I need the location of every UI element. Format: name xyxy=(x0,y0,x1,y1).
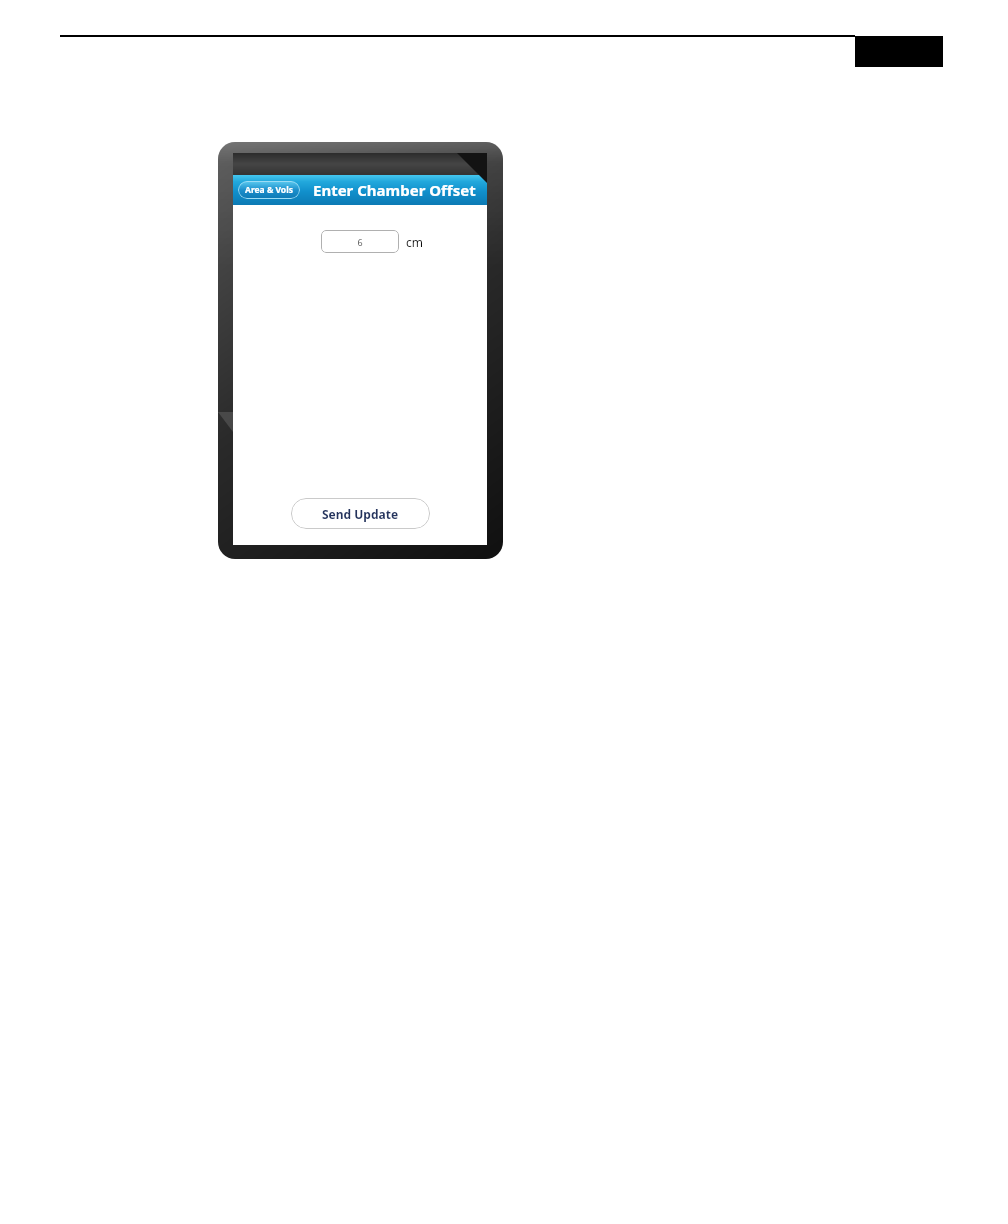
staticText: Area & Vols xyxy=(245,184,293,196)
button[interactable]: Chamber offset value xyxy=(321,230,399,253)
button[interactable]: Area & Vols xyxy=(238,181,300,199)
button[interactable]: Send Update xyxy=(291,498,430,529)
staticText: Send Update xyxy=(322,506,399,522)
staticText: 6 xyxy=(357,236,363,248)
staticText: Enter Chamber Offset xyxy=(313,180,476,200)
staticText: cm xyxy=(406,234,423,250)
